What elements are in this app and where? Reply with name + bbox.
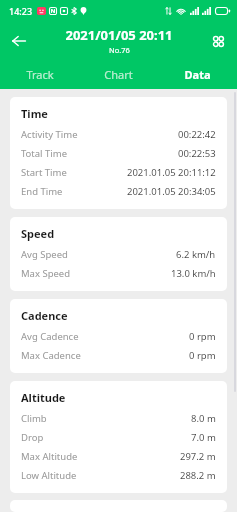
staticText: 7.0 m [191, 431, 216, 444]
staticText: 13.0 km/h [171, 267, 216, 280]
staticText: Avg Speed [21, 248, 68, 261]
staticText: Start Time [21, 166, 67, 179]
button[interactable]: Track [0, 60, 79, 89]
staticText: Total Time [21, 147, 68, 160]
button[interactable]: Grid view [204, 27, 232, 55]
button[interactable]: Data [158, 60, 237, 89]
staticText: Track [26, 67, 54, 82]
staticText: Avg Cadence [21, 330, 79, 343]
staticText: Data [184, 67, 211, 82]
staticText: 6.2 km/h [176, 248, 216, 261]
staticText: 0 rpm [189, 349, 216, 362]
button[interactable]: Chart [79, 60, 158, 89]
staticText: Drop [21, 431, 44, 444]
staticText: 2021.01.05 20:34:05 [127, 185, 216, 198]
staticText: Low Altitude [21, 469, 77, 482]
staticText: Max Cadence [21, 349, 81, 362]
staticText: Chart [104, 67, 133, 82]
button[interactable]: Back [5, 27, 33, 55]
staticText: Activity Time [21, 128, 78, 141]
staticText: Time [21, 106, 48, 121]
staticText: 288.2 m [180, 469, 216, 482]
staticText: Cadence [21, 308, 68, 323]
staticText: 00:22:53 [178, 147, 216, 160]
button[interactable]: Time [10, 97, 227, 209]
staticText: Max Altitude [21, 450, 78, 463]
staticText: 0 rpm [189, 330, 216, 343]
staticText: Altitude [21, 390, 66, 405]
staticText: 8.0 m [191, 412, 216, 425]
button[interactable]: Cadence [10, 299, 227, 373]
staticText: End Time [21, 185, 63, 198]
button[interactable]: Speed [10, 217, 227, 291]
staticText: 2021.01.05 20:11:12 [127, 166, 216, 179]
staticText: 297.2 m [180, 450, 216, 463]
staticText: 14:23 [9, 5, 33, 17]
staticText: 2021/01/05 20:11 [65, 26, 173, 44]
staticText: Climb [21, 412, 47, 425]
button[interactable]: Altitude [10, 381, 227, 493]
staticText: 00:22:42 [178, 128, 216, 141]
staticText: Max Speed [21, 267, 71, 280]
staticText: Speed [21, 226, 55, 241]
staticText: No.76 [109, 45, 130, 55]
